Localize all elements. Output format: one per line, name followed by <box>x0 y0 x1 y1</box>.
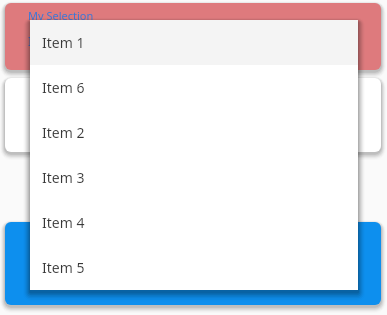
button[interactable] <box>5 222 381 305</box>
staticText: My Selection <box>28 8 94 23</box>
staticText: Item 6 <box>42 78 85 97</box>
button[interactable]: Item 4 <box>30 200 358 245</box>
button[interactable]: Item 3 <box>30 155 358 200</box>
button[interactable]: Item 2 <box>30 110 358 155</box>
button[interactable]: Item 6 <box>30 65 358 110</box>
button[interactable]: Item 5 <box>30 245 358 290</box>
button[interactable] <box>5 78 381 152</box>
button[interactable]: Item 1 <box>30 20 358 65</box>
staticText: Item 2 <box>42 123 85 142</box>
staticText: Item 3 <box>42 168 85 187</box>
staticText: Item 5 <box>42 258 85 277</box>
staticText: I <box>28 32 33 50</box>
button[interactable]: My Selection <box>5 3 381 70</box>
staticText: Item 4 <box>42 213 85 232</box>
staticText: Item 1 <box>42 33 85 52</box>
